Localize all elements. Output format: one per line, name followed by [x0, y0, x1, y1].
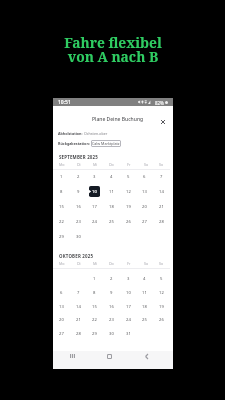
staticText: 10 — [126, 290, 131, 296]
button[interactable]: 8 — [89, 287, 100, 298]
button[interactable]: 6 — [56, 287, 67, 298]
staticText: 26 — [159, 317, 164, 323]
button[interactable]: 12 — [123, 186, 134, 197]
button[interactable]: 13 — [139, 186, 150, 197]
staticText: 2 — [110, 276, 113, 282]
button[interactable]: 31 — [123, 328, 134, 339]
button[interactable]: 9 — [73, 186, 84, 197]
button[interactable]: 2 — [73, 171, 84, 182]
button[interactable]: 8 — [56, 186, 67, 197]
button[interactable]: 22 — [56, 216, 67, 227]
button[interactable]: 16 — [73, 201, 84, 212]
button[interactable]: Back — [140, 350, 152, 362]
button[interactable]: 3 — [123, 273, 134, 284]
staticText: 82% — [155, 100, 164, 106]
button[interactable]: 7 — [73, 287, 84, 298]
button[interactable]: 10 — [123, 287, 134, 298]
button[interactable]: 29 — [89, 328, 100, 339]
button[interactable]: 24 — [123, 314, 134, 325]
button[interactable]: 24 — [89, 216, 100, 227]
staticText: 11 — [142, 290, 147, 296]
button[interactable]: 4 — [139, 273, 150, 284]
staticText: Fr — [127, 261, 131, 266]
button[interactable]: 2 — [106, 273, 117, 284]
staticText: 12 — [126, 189, 131, 195]
button[interactable]: 26 — [123, 216, 134, 227]
button[interactable]: 27 — [56, 328, 67, 339]
button[interactable]: 28 — [156, 216, 167, 227]
staticText: 2 — [77, 174, 80, 180]
button[interactable]: 30 — [73, 231, 84, 242]
button[interactable]: 15 — [89, 301, 100, 312]
staticText: 25 — [109, 219, 114, 225]
staticText: 6 — [60, 290, 63, 296]
button[interactable]: 21 — [73, 314, 84, 325]
button[interactable]: 11 — [106, 186, 117, 197]
staticText: Abholstation: — [58, 131, 83, 136]
staticText: 8 — [60, 189, 63, 195]
staticText: 22 — [59, 219, 64, 225]
staticText: 30 — [109, 331, 114, 337]
button[interactable]: 23 — [73, 216, 84, 227]
button[interactable]: 19 — [156, 301, 167, 312]
button[interactable]: 4 — [106, 171, 117, 182]
staticText: 5 — [127, 174, 130, 180]
button[interactable]: Recents — [66, 350, 78, 362]
staticText: 17 — [126, 304, 131, 310]
button[interactable]: 19 — [123, 201, 134, 212]
button[interactable]: 14 — [156, 186, 167, 197]
button[interactable]: 9 — [106, 287, 117, 298]
button[interactable]: 28 — [73, 328, 84, 339]
staticText: Mi — [93, 261, 98, 266]
staticText: 10:51 — [58, 99, 71, 106]
staticText: 31 — [126, 331, 131, 337]
button[interactable]: 11 — [139, 287, 150, 298]
button[interactable]: 17 — [123, 301, 134, 312]
staticText: Do — [109, 261, 114, 266]
staticText: 26 — [126, 219, 131, 225]
button[interactable]: 3 — [89, 171, 100, 182]
staticText: Fahre flexibel von A nach B — [64, 33, 162, 66]
staticText: 9 — [77, 189, 80, 195]
button[interactable]: 25 — [139, 314, 150, 325]
button[interactable]: 13 — [56, 301, 67, 312]
button[interactable]: Plane Deine Buchung — [53, 112, 173, 126]
button[interactable]: 20 — [56, 314, 67, 325]
button[interactable]: 26 — [156, 314, 167, 325]
button[interactable]: 12 — [156, 287, 167, 298]
staticText: 7 — [77, 290, 80, 296]
staticText: Ochsten-ober — [84, 131, 108, 136]
button[interactable]: Calw Marktplatz — [91, 140, 121, 147]
button[interactable]: Abholstation: — [58, 130, 108, 137]
button[interactable]: 10 — [89, 186, 100, 197]
button[interactable]: 14 — [73, 301, 84, 312]
button[interactable]: 18 — [106, 201, 117, 212]
button[interactable]: Home — [103, 350, 115, 362]
button[interactable]: 1 — [89, 273, 100, 284]
button[interactable]: 1 — [56, 171, 67, 182]
button[interactable]: 17 — [89, 201, 100, 212]
button[interactable]: 16 — [106, 301, 117, 312]
button[interactable]: 18 — [139, 301, 150, 312]
button[interactable]: 5 — [156, 273, 167, 284]
button[interactable]: 30 — [106, 328, 117, 339]
button[interactable]: 6 — [139, 171, 150, 182]
staticText: 19 — [159, 304, 164, 310]
button[interactable]: 23 — [106, 314, 117, 325]
staticText: 23 — [76, 219, 81, 225]
button[interactable]: 21 — [156, 201, 167, 212]
staticText: 24 — [92, 219, 97, 225]
button[interactable]: 7 — [156, 171, 167, 182]
button[interactable]: 15 — [56, 201, 67, 212]
button[interactable]: 20 — [139, 201, 150, 212]
staticText: 4 — [110, 174, 113, 180]
staticText: 17 — [92, 204, 97, 210]
button[interactable]: 5 — [123, 171, 134, 182]
button[interactable]: 25 — [106, 216, 117, 227]
button[interactable]: Schliessen — [159, 118, 167, 126]
button[interactable]: 27 — [139, 216, 150, 227]
staticText: Mi — [93, 162, 98, 167]
button[interactable]: 29 — [56, 231, 67, 242]
staticText: 3 — [127, 276, 130, 282]
button[interactable]: 22 — [89, 314, 100, 325]
